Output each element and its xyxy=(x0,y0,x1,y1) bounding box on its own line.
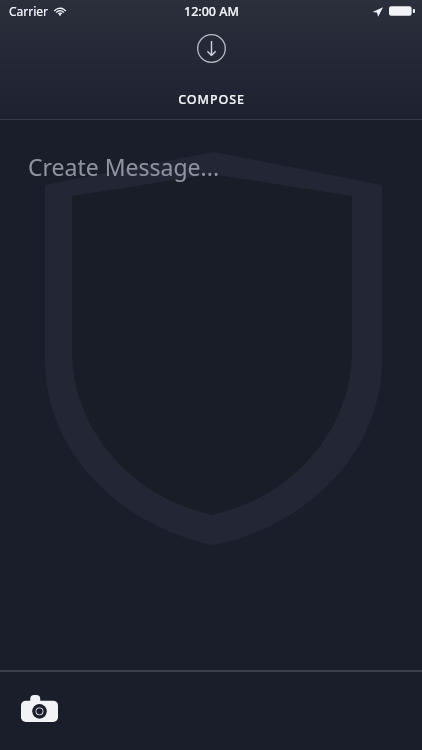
staticText: Create Message... xyxy=(28,151,220,182)
staticText: COMPOSE xyxy=(178,91,245,108)
button[interactable]: Create Message... xyxy=(0,120,422,671)
button[interactable]: Camera xyxy=(12,686,66,730)
button[interactable]: Dismiss xyxy=(197,34,226,63)
staticText: Carrier xyxy=(9,3,49,19)
staticText: 12:00 AM xyxy=(184,3,239,20)
